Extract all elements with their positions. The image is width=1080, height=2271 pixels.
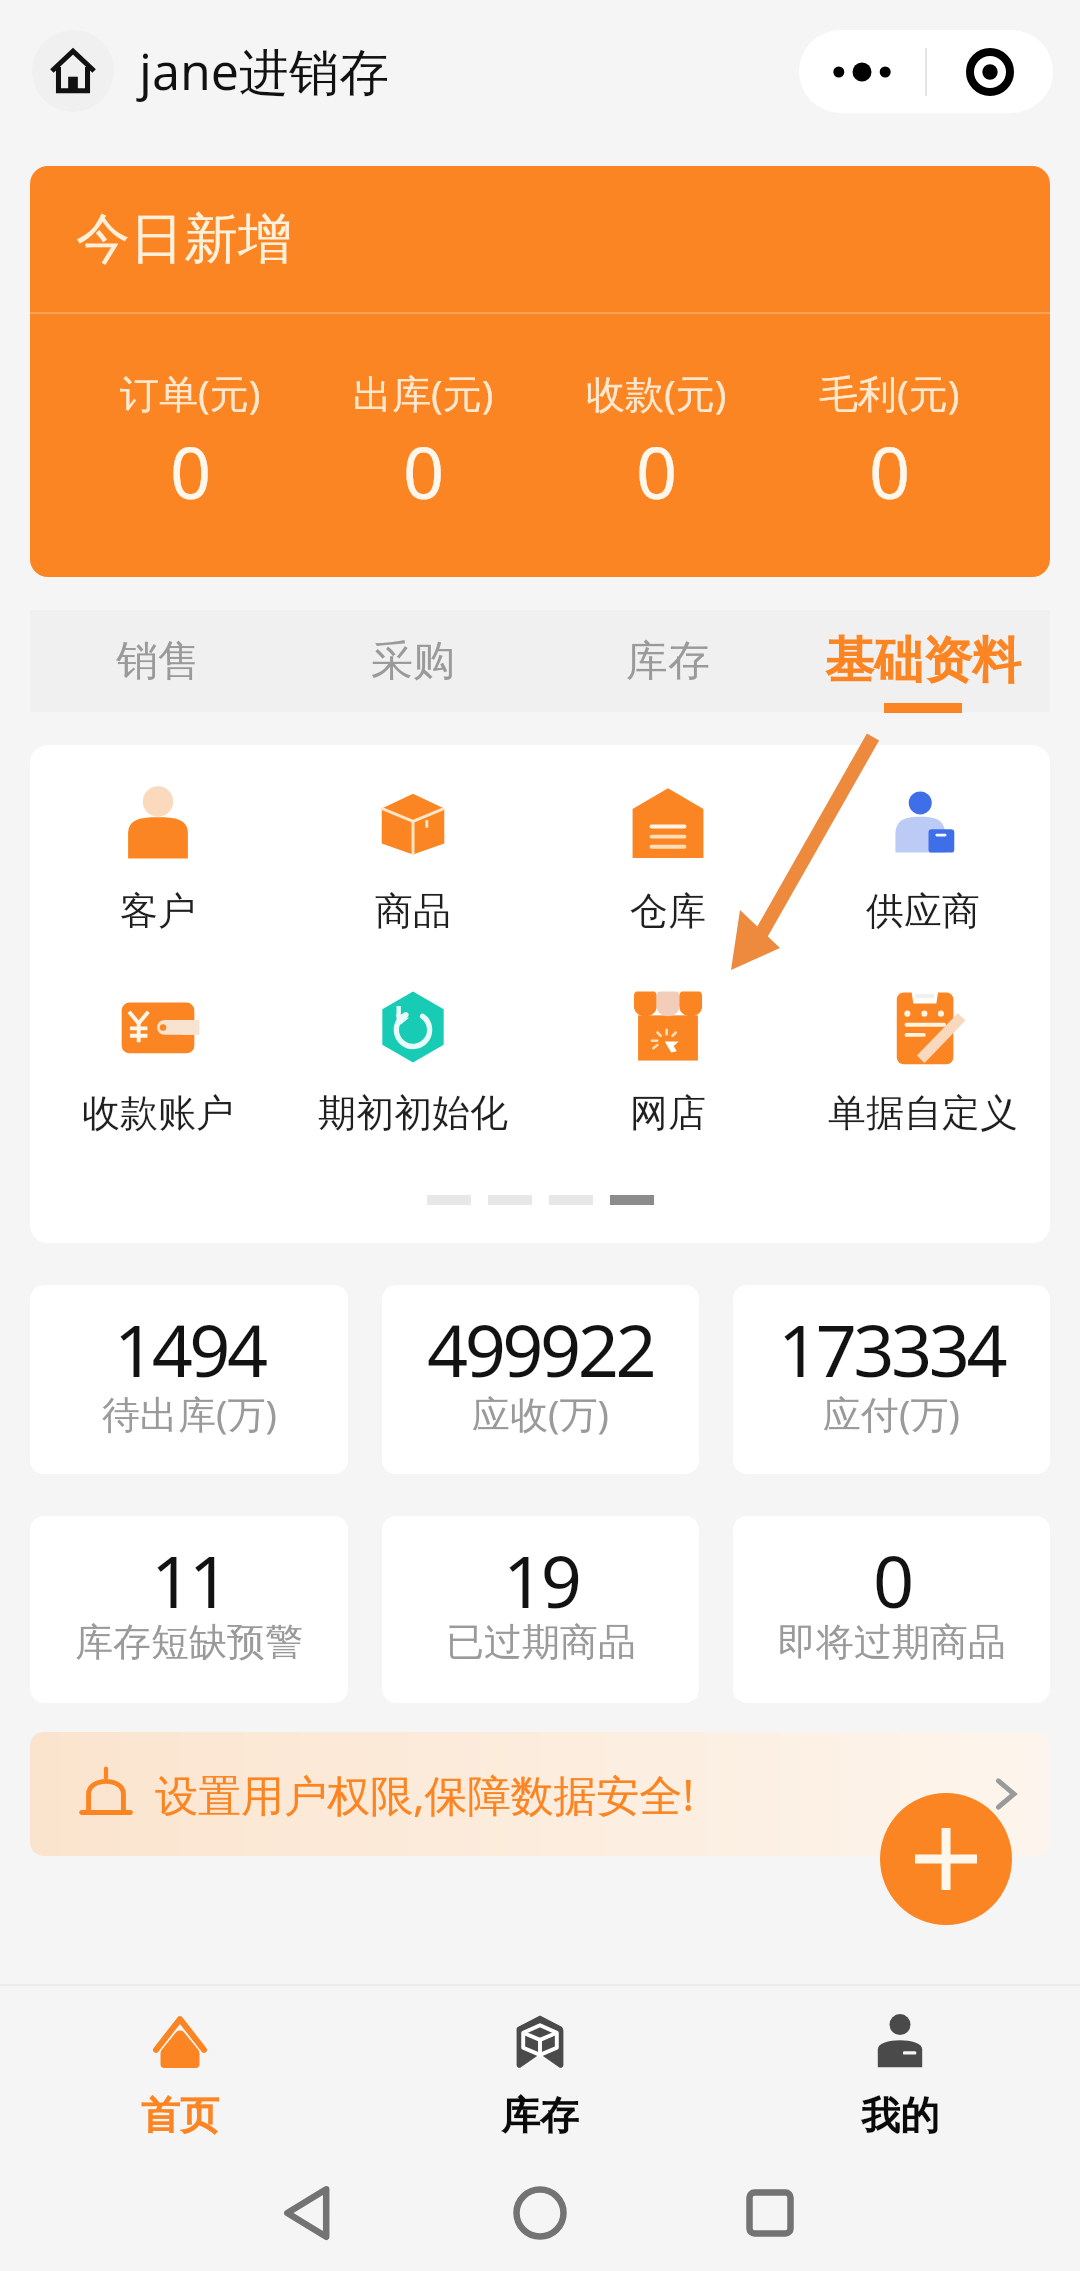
button[interactable]: 0 — [733, 1516, 1050, 1703]
staticText: 173334 — [778, 1300, 1005, 1398]
staticText: 已过期商品 — [446, 1618, 636, 1666]
button[interactable]: More — [799, 30, 925, 113]
staticText: 基础资料 — [825, 630, 1021, 692]
staticText: 19 — [503, 1531, 579, 1629]
button[interactable]: 今日新增 — [30, 166, 1050, 577]
button[interactable]: 首页 — [0, 1997, 360, 2155]
button[interactable]: 毛利(元) — [773, 314, 1006, 577]
button[interactable]: 收款账户 — [30, 981, 285, 1137]
staticText: 收款账户 — [82, 1089, 234, 1137]
button[interactable]: 库存 — [360, 1997, 720, 2155]
staticText: 1494 — [114, 1300, 265, 1398]
button[interactable]: Add — [880, 1793, 1012, 1925]
staticText: 待出库(万) — [102, 1387, 277, 1439]
button[interactable]: 19 — [382, 1516, 699, 1703]
button[interactable]: 出库(元) — [307, 314, 540, 577]
staticText: 我的 — [861, 2091, 939, 2140]
staticText: jane进销存 — [139, 37, 390, 105]
button[interactable]: 客户 — [30, 779, 285, 935]
button[interactable]: Close — [927, 30, 1053, 113]
button[interactable]: 商品 — [285, 779, 540, 935]
staticText: 库存 — [501, 2091, 579, 2140]
staticText: 客户 — [120, 887, 196, 935]
staticText: 毛利(元) — [819, 366, 960, 419]
button[interactable]: 供应商 — [795, 779, 1050, 935]
button[interactable]: 11 — [30, 1516, 348, 1703]
staticText: 应收(万) — [472, 1387, 609, 1439]
button[interactable]: Recents — [690, 2155, 850, 2271]
staticText: 单据自定义 — [828, 1089, 1018, 1137]
staticText: 应付(万) — [823, 1387, 960, 1439]
staticText: 出库(元) — [353, 366, 494, 419]
button[interactable]: 期初初始化 — [285, 981, 540, 1137]
button[interactable]: 销售 — [30, 610, 285, 712]
staticText: 销售 — [116, 635, 200, 688]
staticText: 0 — [636, 422, 678, 520]
staticText: 0 — [403, 422, 445, 520]
staticText: 0 — [873, 1531, 911, 1629]
staticText: 期初初始化 — [318, 1089, 508, 1137]
button[interactable]: 基础资料 — [795, 610, 1050, 712]
staticText: 网店 — [630, 1089, 706, 1137]
staticText: 0 — [869, 422, 911, 520]
button[interactable]: 网店 — [540, 981, 795, 1137]
staticText: 供应商 — [866, 887, 980, 935]
staticText: 设置用户权限,保障数据安全! — [155, 1765, 695, 1824]
staticText: 今日新增 — [76, 205, 292, 273]
button[interactable]: 1494 — [30, 1285, 348, 1474]
button[interactable]: 单据自定义 — [795, 981, 1050, 1137]
button[interactable]: 仓库 — [540, 779, 795, 935]
staticText: 收款(元) — [586, 366, 727, 419]
staticText: 库存短缺预警 — [75, 1618, 303, 1666]
button[interactable]: 库存 — [540, 610, 795, 712]
button[interactable]: Back — [230, 2155, 390, 2271]
staticText: 11 — [151, 1531, 227, 1629]
staticText: 首页 — [141, 2091, 219, 2140]
staticText: 0 — [170, 422, 212, 520]
button[interactable]: 我的 — [720, 1997, 1080, 2155]
staticText: 即将过期商品 — [778, 1618, 1006, 1666]
staticText: 499922 — [427, 1300, 654, 1398]
button[interactable]: Home — [460, 2155, 620, 2271]
button[interactable]: Home — [32, 30, 114, 112]
staticText: 仓库 — [630, 887, 706, 935]
button[interactable]: 499922 — [382, 1285, 699, 1474]
staticText: 商品 — [375, 887, 451, 935]
button[interactable]: 设置用户权限,保障数据安全! — [30, 1732, 1050, 1856]
button[interactable]: 收款(元) — [540, 314, 773, 577]
button[interactable]: 173334 — [733, 1285, 1050, 1474]
staticText: 采购 — [371, 635, 455, 688]
button[interactable]: 订单(元) — [74, 314, 307, 577]
button[interactable]: 采购 — [285, 610, 540, 712]
staticText: 库存 — [626, 635, 710, 688]
staticText: 订单(元) — [120, 366, 261, 419]
